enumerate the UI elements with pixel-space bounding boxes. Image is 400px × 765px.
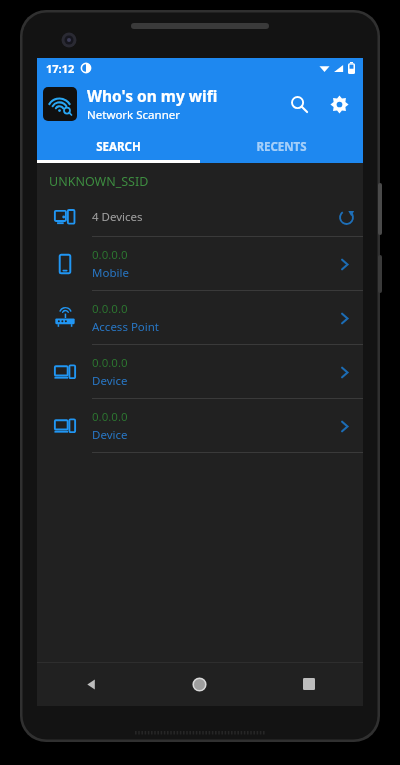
other: Open details — [327, 247, 361, 281]
button[interactable]: SEARCH — [37, 130, 200, 163]
button[interactable]: 0.0.0.0 — [37, 291, 363, 344]
button[interactable]: Back — [37, 662, 145, 706]
staticText: 0.0.0.0 — [92, 301, 128, 317]
staticText: Mobile — [92, 265, 129, 281]
staticText: UNKNOWN_SSID — [49, 173, 149, 190]
other: Open details — [327, 409, 361, 443]
button[interactable]: Search — [281, 86, 317, 122]
staticText: Device — [92, 373, 128, 389]
button[interactable]: 4 Devices — [37, 198, 363, 236]
staticText: SEARCH — [96, 139, 141, 155]
button[interactable]: Recents — [254, 662, 363, 706]
staticText: 0.0.0.0 — [92, 247, 128, 263]
button[interactable]: Settings — [321, 86, 357, 122]
staticText: 4 Devices — [92, 209, 143, 225]
staticText: 0.0.0.0 — [92, 355, 128, 371]
button[interactable]: Home — [145, 662, 254, 706]
staticText: Device — [92, 427, 128, 443]
staticText: Access Point — [92, 319, 160, 335]
staticText: 0.0.0.0 — [92, 409, 128, 425]
button[interactable]: 0.0.0.0 — [37, 399, 363, 452]
button[interactable]: Refresh — [329, 200, 363, 234]
button[interactable]: 0.0.0.0 — [37, 237, 363, 290]
other: Open details — [327, 355, 361, 389]
staticText: Network Scanner — [87, 107, 180, 123]
button[interactable]: 0.0.0.0 — [37, 345, 363, 398]
other: Open details — [327, 301, 361, 335]
staticText: Who's on my wifi — [87, 85, 218, 106]
button[interactable]: App icon — [43, 87, 77, 121]
button[interactable]: RECENTS — [200, 130, 363, 163]
staticText: RECENTS — [256, 139, 307, 155]
staticText: 17:12 — [46, 61, 75, 76]
